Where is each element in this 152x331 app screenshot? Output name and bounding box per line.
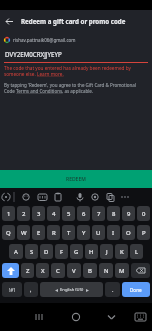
staticText: Z — [26, 267, 30, 275]
staticText: D — [44, 248, 49, 256]
button[interactable]: O — [122, 225, 135, 240]
staticText: H — [89, 248, 94, 256]
staticText: rishav.pattnaik06@gmail.com — [13, 37, 76, 43]
button[interactable]: 9 — [122, 206, 135, 221]
staticText: DVY2EM0CRXJJYEYP — [5, 50, 62, 58]
staticText: REDEEM — [66, 176, 86, 183]
button[interactable]: I — [107, 225, 120, 240]
button[interactable]: M — [115, 263, 129, 278]
button[interactable]: 1 — [2, 206, 15, 221]
staticText: I — [112, 229, 115, 237]
button[interactable]: Done — [122, 282, 150, 297]
staticText: 2 — [22, 210, 26, 218]
button[interactable]: P — [137, 225, 150, 240]
button[interactable]: W — [17, 225, 30, 240]
button[interactable]: V — [67, 263, 81, 278]
staticText: 4 — [52, 210, 56, 218]
staticText: L — [135, 248, 139, 256]
staticText: 7 — [97, 210, 101, 218]
staticText: R — [52, 229, 56, 237]
button[interactable]: Q — [2, 225, 15, 240]
button[interactable]: U — [92, 225, 105, 240]
staticText: A — [14, 248, 18, 256]
button[interactable]: 7 — [92, 206, 105, 221]
staticText: X — [41, 267, 45, 275]
button[interactable] — [24, 303, 52, 331]
button[interactable]: N — [99, 263, 113, 278]
button[interactable] — [64, 303, 92, 331]
button[interactable]: C — [51, 263, 65, 278]
button[interactable]: H — [85, 244, 98, 259]
button[interactable] — [16, 188, 30, 206]
button[interactable]: 2 — [17, 206, 30, 221]
button[interactable] — [2, 263, 19, 278]
staticText: P — [142, 229, 146, 237]
staticText: M — [119, 267, 125, 275]
button[interactable]: T — [62, 225, 75, 240]
button[interactable]: L — [130, 244, 143, 259]
button[interactable] — [44, 188, 58, 206]
staticText: W — [21, 229, 27, 237]
button[interactable] — [131, 263, 150, 278]
staticText: T — [67, 229, 71, 237]
staticText: 1 — [7, 210, 11, 218]
button[interactable] — [30, 188, 44, 206]
button[interactable] — [58, 188, 72, 206]
staticText: English (US) — [60, 287, 84, 293]
button[interactable]: B — [83, 263, 97, 278]
staticText: C — [56, 267, 60, 275]
staticText: S — [30, 248, 34, 256]
button[interactable] — [136, 303, 152, 331]
staticText: 0 — [142, 210, 146, 218]
button[interactable]: Y — [77, 225, 90, 240]
staticText: N — [104, 267, 109, 275]
staticText: 8 — [112, 210, 116, 218]
button[interactable] — [0, 188, 16, 206]
staticText: , — [30, 286, 32, 293]
button[interactable]: rishav.pattnaik06@gmail.com — [4, 37, 76, 43]
button[interactable]: K — [115, 244, 128, 259]
staticText: Done — [130, 287, 142, 293]
staticText: O — [126, 229, 131, 237]
button[interactable] — [100, 188, 114, 206]
staticText: !#1 — [9, 287, 16, 293]
button[interactable]: D — [40, 244, 53, 259]
button[interactable]: J — [100, 244, 113, 259]
button[interactable]: . — [105, 282, 120, 297]
button[interactable]: G — [70, 244, 83, 259]
button[interactable]: A — [9, 244, 23, 259]
button[interactable]: R — [47, 225, 60, 240]
button[interactable]: Z — [21, 263, 34, 278]
staticText: Y — [82, 229, 86, 237]
staticText: 5 — [67, 210, 71, 218]
button[interactable]: 4 — [47, 206, 60, 221]
staticText: . — [112, 286, 114, 293]
staticText: B — [88, 267, 92, 275]
button[interactable]: F — [55, 244, 68, 259]
button[interactable] — [104, 303, 132, 331]
button[interactable]: REDEEM — [0, 170, 152, 188]
button[interactable]: 0 — [137, 206, 150, 221]
button[interactable]: 5 — [62, 206, 75, 221]
button[interactable]: , — [24, 282, 38, 297]
staticText: Q — [6, 229, 11, 237]
staticText: F — [60, 248, 64, 256]
button[interactable] — [86, 188, 100, 206]
button[interactable]: 6 — [77, 206, 90, 221]
button[interactable] — [72, 188, 86, 206]
staticText: E — [37, 229, 41, 237]
button[interactable]: S — [25, 244, 38, 259]
button[interactable] — [0, 12, 18, 30]
button[interactable]: E — [32, 225, 45, 240]
button[interactable]: !#1 — [2, 282, 22, 297]
staticText: V — [72, 267, 76, 275]
button[interactable]: 8 — [107, 206, 120, 221]
button[interactable]: English (US) — [40, 282, 103, 297]
staticText: By tapping 'Redeem', you agree to the Gi… — [4, 82, 137, 94]
staticText: 3 — [37, 210, 41, 218]
button[interactable]: X — [36, 263, 49, 278]
button[interactable]: 3 — [32, 206, 45, 221]
staticText: 6 — [82, 210, 86, 218]
staticText: The code that you entered has already be… — [4, 65, 131, 77]
staticText: K — [120, 248, 124, 256]
